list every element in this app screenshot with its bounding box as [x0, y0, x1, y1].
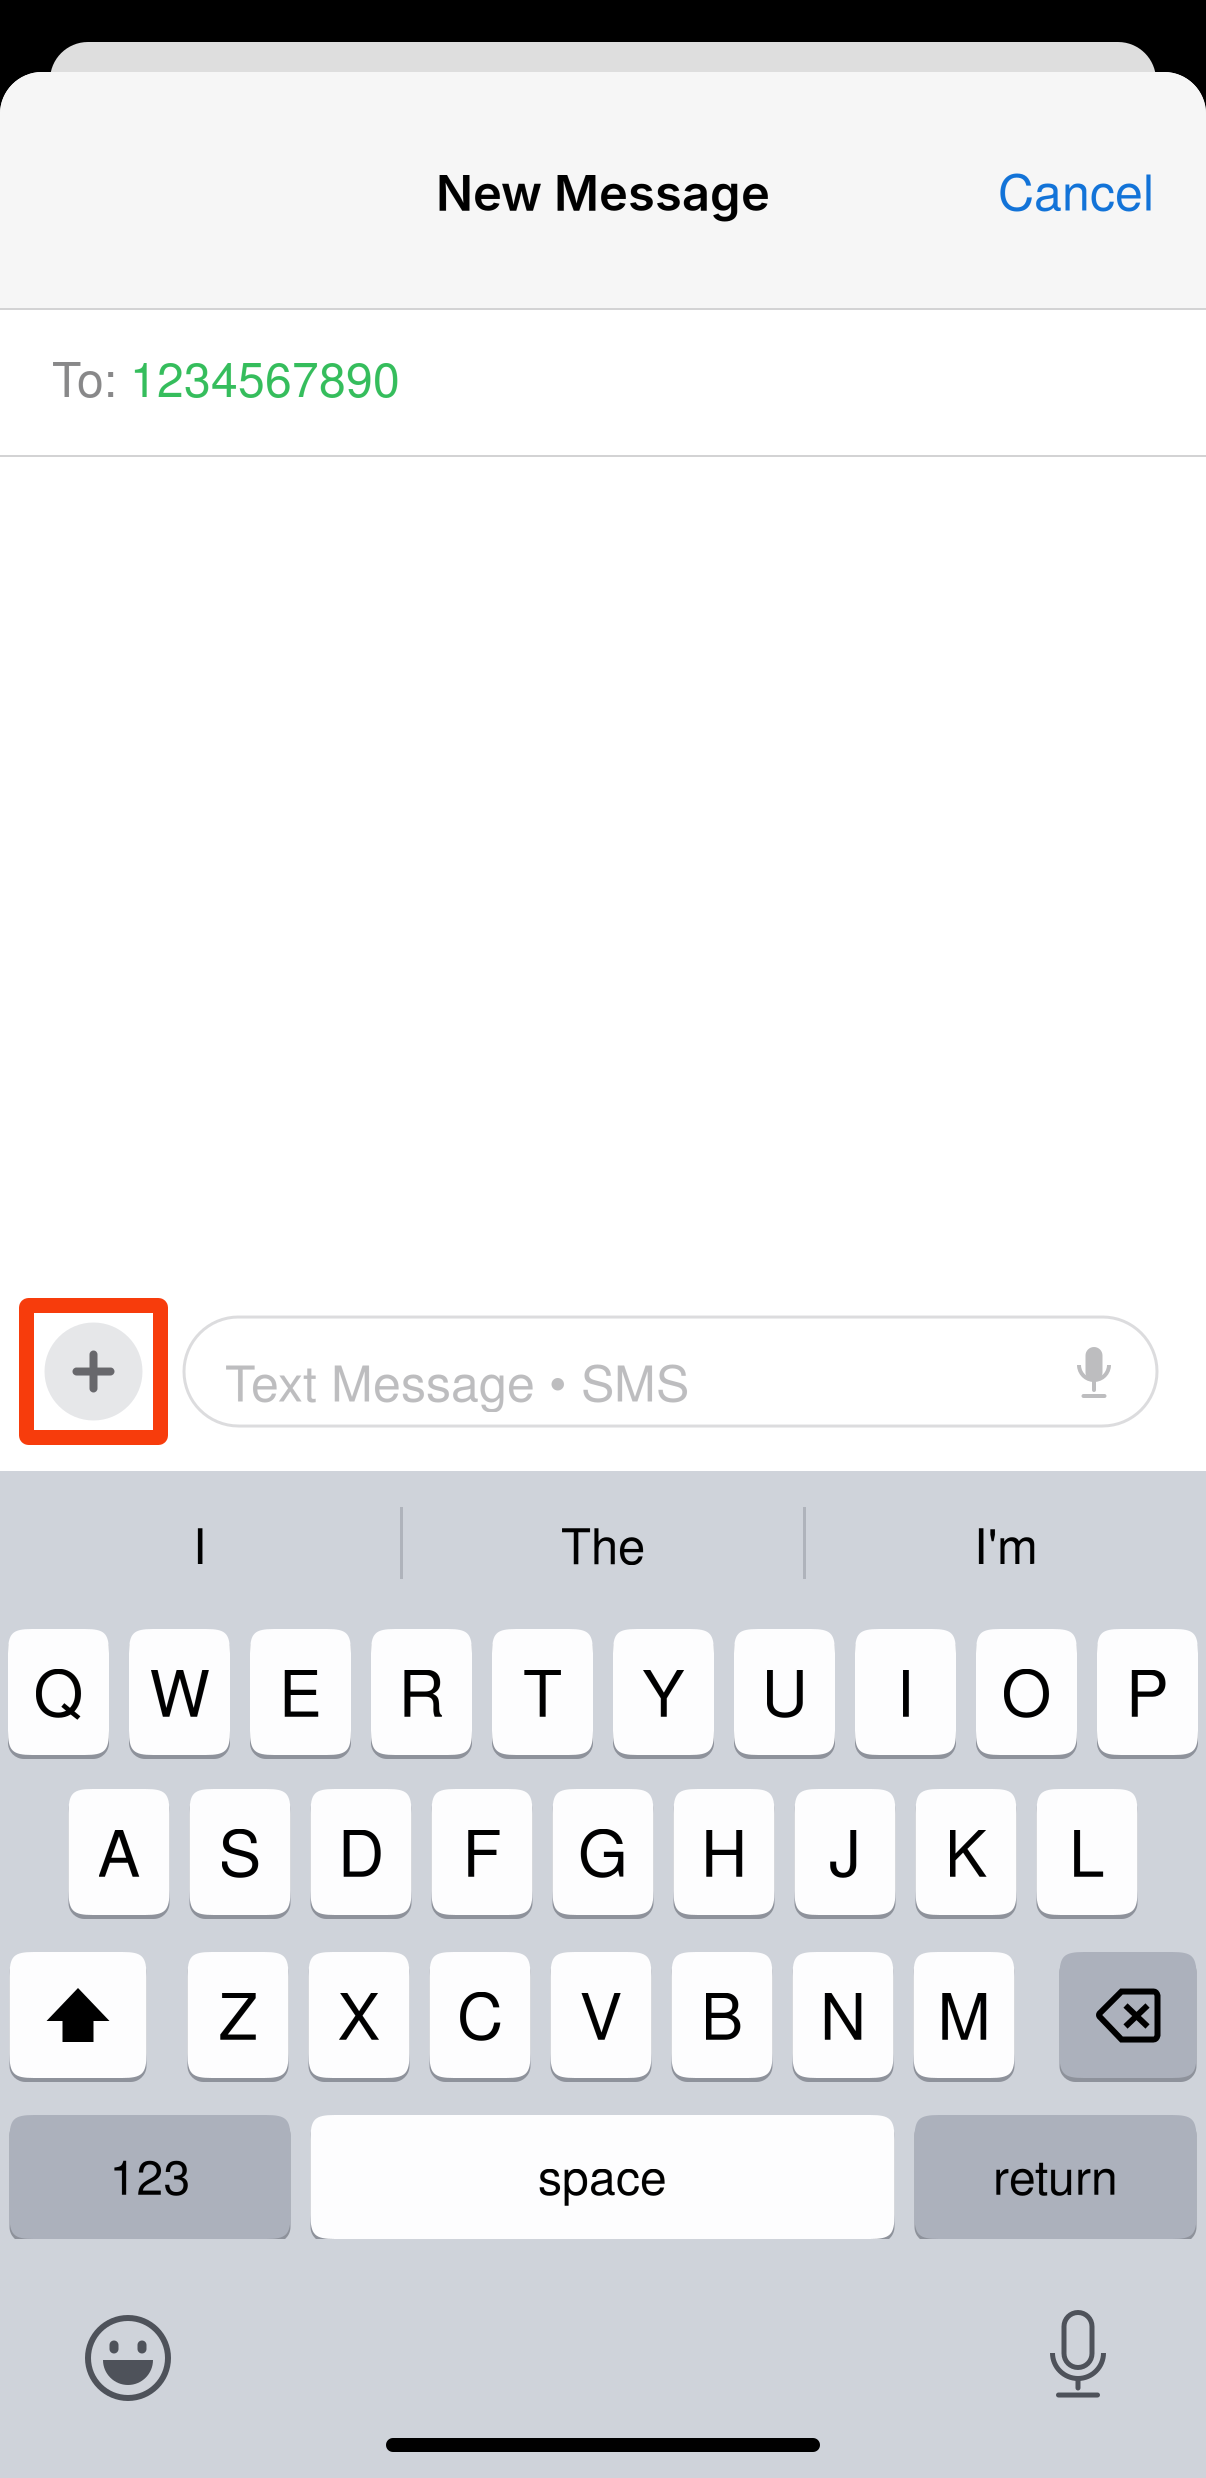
- button[interactable]: Delete: [1059, 1952, 1196, 2078]
- staticText: M: [937, 1966, 990, 2058]
- staticText: C: [457, 1966, 503, 2058]
- button[interactable]: I: [855, 1629, 956, 1755]
- button[interactable]: The: [403, 1483, 803, 1603]
- button[interactable]: 123: [9, 2115, 290, 2239]
- button[interactable]: Dictation: [1028, 2305, 1128, 2405]
- button[interactable]: F: [431, 1789, 532, 1915]
- staticText: New Message: [436, 163, 770, 222]
- button[interactable]: I'm: [806, 1483, 1206, 1603]
- button[interactable]: T: [492, 1629, 593, 1755]
- staticText: To:: [52, 342, 130, 411]
- staticText: G: [578, 1803, 628, 1895]
- staticText: The: [561, 1508, 645, 1578]
- button[interactable]: E: [250, 1629, 351, 1755]
- staticText: K: [944, 1803, 987, 1895]
- button[interactable]: H: [673, 1789, 774, 1915]
- button[interactable]: Emoji: [78, 2308, 178, 2408]
- button[interactable]: Y: [613, 1629, 714, 1755]
- button[interactable]: D: [310, 1789, 411, 1915]
- button[interactable]: R: [371, 1629, 472, 1755]
- staticText: Y: [642, 1643, 685, 1735]
- button[interactable]: Shift: [9, 1952, 146, 2078]
- staticText: L: [1069, 1803, 1105, 1895]
- button[interactable]: A: [68, 1789, 169, 1915]
- staticText: R: [398, 1643, 444, 1735]
- button[interactable]: J: [794, 1789, 895, 1915]
- button[interactable]: X: [308, 1952, 409, 2078]
- button[interactable]: return: [914, 2115, 1196, 2239]
- staticText: V: [579, 1966, 622, 2058]
- button[interactable]: O: [976, 1629, 1077, 1755]
- staticText: space: [538, 2140, 667, 2208]
- staticText: F: [462, 1803, 501, 1895]
- button[interactable]: Q: [8, 1629, 109, 1755]
- staticText: J: [829, 1803, 861, 1895]
- button[interactable]: Cancel: [972, 133, 1180, 245]
- button[interactable]: L: [1036, 1789, 1137, 1915]
- staticText: Z: [218, 1966, 257, 2058]
- button[interactable]: B: [671, 1952, 772, 2078]
- staticText: I: [193, 1508, 207, 1578]
- staticText: I'm: [974, 1508, 1038, 1578]
- button[interactable]: W: [129, 1629, 230, 1755]
- staticText: H: [701, 1803, 747, 1895]
- staticText: N: [820, 1966, 866, 2058]
- button[interactable]: N: [792, 1952, 893, 2078]
- staticText: W: [149, 1643, 209, 1735]
- staticText: E: [279, 1643, 322, 1735]
- staticText: 123: [109, 2140, 190, 2208]
- button[interactable]: V: [550, 1952, 651, 2078]
- button[interactable]: K: [915, 1789, 1016, 1915]
- button[interactable]: U: [734, 1629, 835, 1755]
- staticText: O: [1001, 1643, 1051, 1735]
- staticText: 1234567890: [130, 342, 400, 411]
- button[interactable]: P: [1097, 1629, 1198, 1755]
- button[interactable]: I: [0, 1483, 400, 1603]
- staticText: A: [97, 1803, 140, 1895]
- staticText: Q: [33, 1643, 83, 1735]
- button[interactable]: S: [189, 1789, 290, 1915]
- staticText: B: [700, 1966, 743, 2058]
- button[interactable]: M: [913, 1952, 1014, 2078]
- button[interactable]: G: [552, 1789, 653, 1915]
- staticText: Text Message • SMS: [225, 1344, 689, 1416]
- staticText: U: [761, 1643, 807, 1735]
- button[interactable]: space: [310, 2115, 894, 2239]
- staticText: return: [993, 2140, 1118, 2208]
- staticText: S: [218, 1803, 261, 1895]
- staticText: D: [338, 1803, 384, 1895]
- button[interactable]: Add attachment: [19, 1298, 168, 1445]
- staticText: Cancel: [998, 153, 1154, 225]
- staticText: T: [523, 1643, 562, 1735]
- button[interactable]: C: [429, 1952, 530, 2078]
- staticText: P: [1126, 1643, 1169, 1735]
- button[interactable]: Z: [187, 1952, 288, 2078]
- staticText: X: [337, 1966, 380, 2058]
- staticText: I: [896, 1643, 914, 1735]
